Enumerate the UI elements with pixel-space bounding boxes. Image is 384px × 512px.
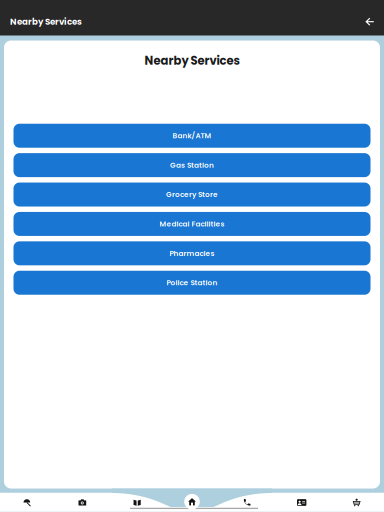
button[interactable]: Attractions	[0, 493, 55, 512]
staticText: Police Station	[166, 278, 217, 288]
button[interactable]: Pharmacies	[13, 241, 370, 265]
staticText: Nearby Services	[144, 52, 239, 69]
staticText: Pharmacies	[169, 248, 214, 258]
staticText: Bank/ATM	[172, 131, 211, 141]
button[interactable]: Contacts	[274, 493, 329, 512]
staticText: Nearby Services	[10, 16, 82, 28]
button[interactable]: Gas Station	[13, 153, 370, 177]
staticText: Grocery Store	[166, 189, 218, 200]
button[interactable]: Medical Facilities	[13, 212, 370, 236]
button[interactable]: Grocery Store	[13, 182, 370, 206]
button[interactable]: Bank/ATM	[13, 124, 370, 148]
button[interactable]: Guide	[110, 493, 165, 512]
button[interactable]: Shop	[329, 493, 384, 512]
button[interactable]: Back	[363, 16, 377, 27]
button[interactable]: Photos	[55, 493, 110, 512]
staticText: Gas Station	[170, 160, 214, 170]
staticText: Medical Facilities	[159, 219, 224, 229]
button[interactable]: Call	[219, 493, 274, 512]
button[interactable]: Home	[181, 491, 203, 512]
button[interactable]: Police Station	[13, 271, 370, 295]
